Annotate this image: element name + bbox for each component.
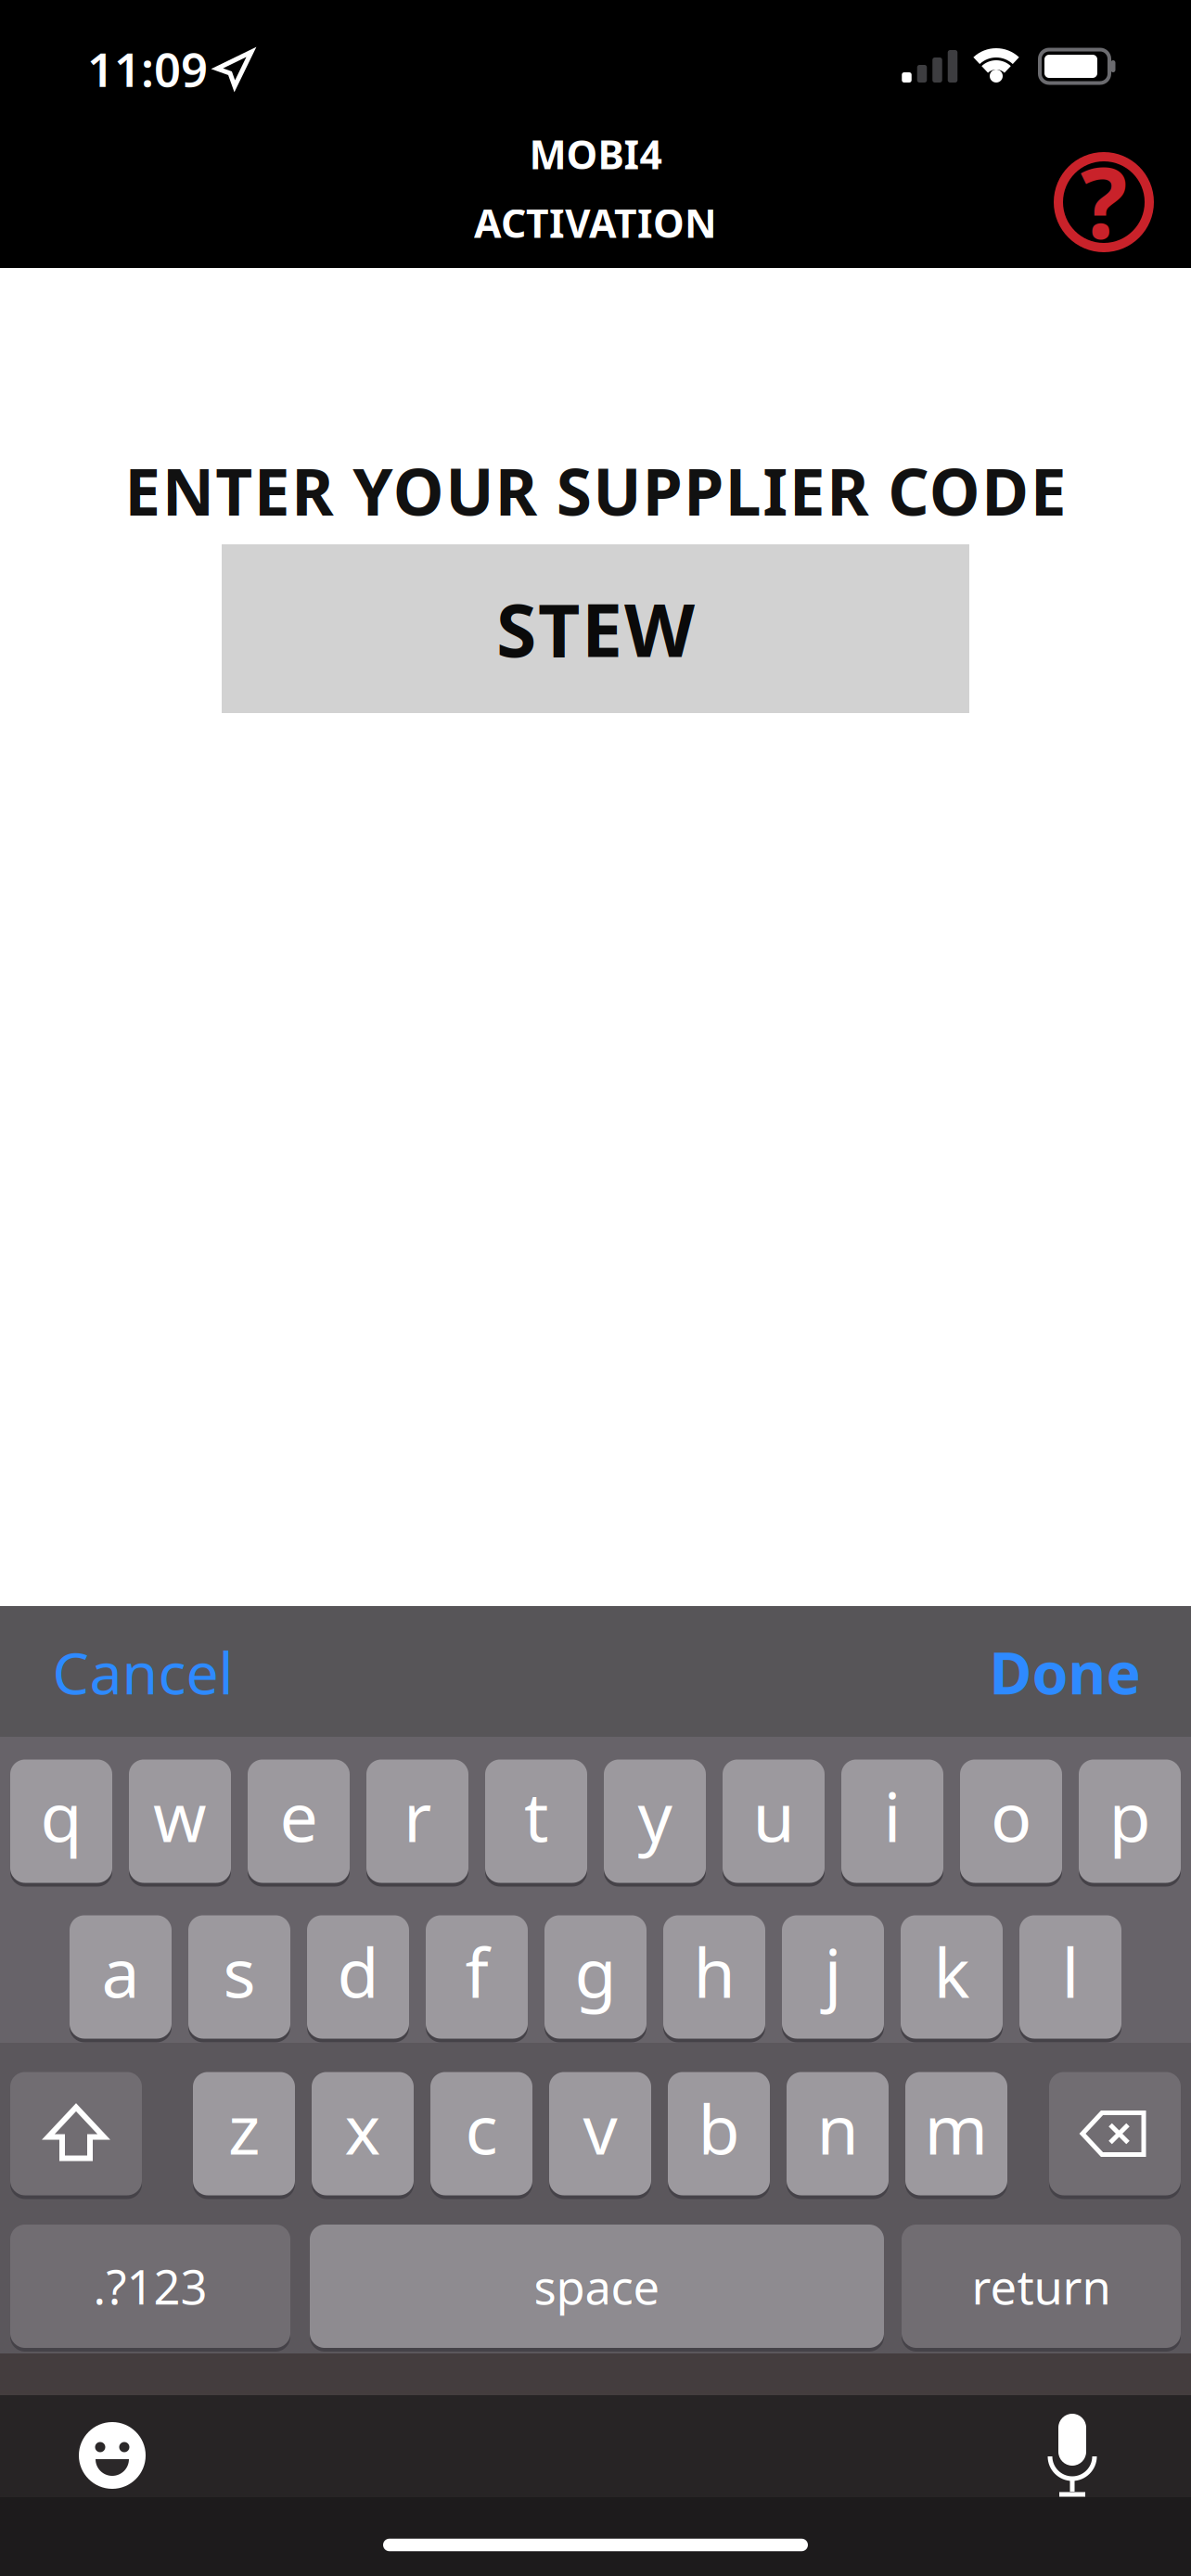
button[interactable]: c — [430, 2072, 532, 2195]
button[interactable]: u — [723, 1760, 825, 1883]
staticText: y — [638, 1770, 672, 1861]
button[interactable]: z — [193, 2072, 295, 2195]
button[interactable]: .?123 — [10, 2225, 290, 2348]
staticText: b — [698, 2083, 740, 2173]
button[interactable]: space — [310, 2225, 884, 2348]
button[interactable]: Dictate — [1049, 2413, 1095, 2506]
button[interactable]: Delete — [1049, 2072, 1181, 2195]
staticText: ? — [1080, 135, 1127, 266]
button[interactable]: d — [307, 1915, 409, 2039]
staticText: u — [753, 1770, 794, 1861]
button[interactable]: Cancel — [52, 1633, 233, 1710]
staticText: q — [40, 1770, 82, 1861]
staticText: d — [337, 1926, 379, 2017]
staticText: space — [534, 2255, 660, 2317]
button[interactable]: k — [901, 1915, 1003, 2039]
staticText: ACTIVATION — [474, 196, 717, 249]
staticText: STEW — [496, 580, 695, 677]
staticText: Cancel — [52, 1633, 233, 1710]
staticText: MOBI4 — [529, 128, 662, 180]
button[interactable]: q — [10, 1760, 112, 1883]
staticText: return — [972, 2255, 1111, 2317]
button[interactable]: v — [549, 2072, 651, 2195]
button[interactable]: r — [366, 1760, 468, 1883]
staticText: t — [524, 1770, 548, 1861]
staticText: o — [991, 1770, 1031, 1861]
button[interactable]: e — [248, 1760, 350, 1883]
staticText: z — [228, 2083, 260, 2173]
staticText: v — [583, 2083, 617, 2173]
button[interactable]: j — [782, 1915, 884, 2039]
staticText: ENTER YOUR SUPPLIER CODE — [124, 448, 1066, 533]
staticText: n — [817, 2083, 858, 2173]
button[interactable]: Shift — [10, 2072, 142, 2195]
button[interactable]: s — [188, 1915, 290, 2039]
button[interactable]: x — [312, 2072, 414, 2195]
button[interactable]: STEW — [222, 544, 969, 713]
button[interactable]: n — [787, 2072, 889, 2195]
staticText: p — [1109, 1770, 1151, 1861]
staticText: e — [280, 1770, 318, 1861]
staticText: x — [345, 2083, 381, 2173]
staticText: f — [465, 1926, 488, 2017]
button[interactable]: p — [1079, 1760, 1181, 1883]
button[interactable]: Emoji — [79, 2422, 146, 2489]
staticText: .?123 — [93, 2255, 207, 2317]
staticText: c — [465, 2083, 498, 2173]
staticText: a — [102, 1926, 140, 2017]
button[interactable]: Help — [1054, 153, 1153, 252]
staticText: j — [824, 1926, 842, 2017]
button[interactable]: f — [426, 1915, 528, 2039]
button[interactable]: o — [960, 1760, 1062, 1883]
button[interactable]: w — [129, 1760, 231, 1883]
button[interactable]: h — [663, 1915, 765, 2039]
staticText: i — [884, 1770, 901, 1861]
staticText: k — [934, 1926, 970, 2017]
staticText: s — [223, 1926, 256, 2017]
button[interactable]: y — [604, 1760, 706, 1883]
button[interactable]: i — [841, 1760, 943, 1883]
button[interactable]: l — [1019, 1915, 1121, 2039]
button[interactable]: g — [544, 1915, 647, 2039]
staticText: h — [693, 1926, 735, 2017]
button[interactable]: Done — [989, 1633, 1140, 1710]
staticText: m — [924, 2083, 988, 2173]
staticText: r — [403, 1770, 431, 1861]
staticText: l — [1062, 1926, 1079, 2017]
staticText: Done — [989, 1633, 1140, 1710]
button[interactable]: return — [902, 2225, 1181, 2348]
button[interactable]: t — [485, 1760, 587, 1883]
button[interactable]: a — [70, 1915, 172, 2039]
staticText: w — [153, 1770, 207, 1861]
staticText: g — [575, 1926, 616, 2017]
button[interactable]: b — [668, 2072, 770, 2195]
button[interactable]: m — [905, 2072, 1007, 2195]
staticText: 11:09 — [87, 37, 208, 100]
